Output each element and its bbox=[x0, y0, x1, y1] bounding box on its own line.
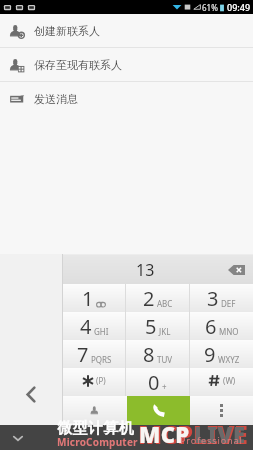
staticText: 微型计算机 bbox=[57, 419, 134, 438]
button[interactable]: More options bbox=[190, 396, 253, 425]
staticText: 发送消息 bbox=[34, 92, 78, 106]
staticText: JKL bbox=[159, 326, 171, 337]
staticText: (W) bbox=[223, 375, 236, 386]
staticText: 1 bbox=[82, 285, 94, 312]
staticText: 5 bbox=[145, 313, 157, 340]
button[interactable]: Hide keyboard bbox=[11, 431, 25, 445]
button[interactable]: 5 bbox=[126, 312, 189, 340]
button[interactable]: 2 bbox=[126, 284, 189, 312]
staticText: (P) bbox=[96, 375, 106, 386]
staticText: PQRS bbox=[91, 354, 112, 365]
button[interactable]: Back bbox=[25, 386, 37, 403]
staticText: WXYZ bbox=[218, 354, 240, 365]
button[interactable]: Call bbox=[127, 396, 190, 425]
staticText: ABC bbox=[157, 298, 173, 309]
staticText: 2 bbox=[143, 285, 155, 312]
staticText: 保存至现有联系人 bbox=[34, 58, 122, 72]
staticText: + bbox=[162, 381, 167, 392]
button[interactable]: 创建新联系人 bbox=[0, 14, 253, 47]
button[interactable]: 4 bbox=[63, 312, 125, 340]
button[interactable]: (P) bbox=[63, 368, 125, 396]
staticText: 13 bbox=[136, 259, 155, 281]
staticText: 6 bbox=[205, 313, 217, 340]
staticText: 8 bbox=[143, 341, 155, 368]
button[interactable]: 8 bbox=[126, 340, 189, 368]
staticText: TUV bbox=[157, 354, 173, 365]
staticText: MicroComputer bbox=[57, 435, 138, 449]
button[interactable]: 0 bbox=[126, 368, 189, 396]
button[interactable]: 发送消息 bbox=[0, 82, 253, 115]
button[interactable]: (W) bbox=[190, 368, 253, 396]
button[interactable]: 9 bbox=[190, 340, 253, 368]
staticText: Professional bbox=[180, 434, 243, 446]
staticText: MNO bbox=[219, 326, 239, 337]
staticText: MCP bbox=[139, 419, 190, 449]
staticText: 0 bbox=[148, 369, 160, 396]
staticText: LIVE bbox=[193, 417, 248, 450]
button[interactable]: Backspace bbox=[228, 265, 245, 275]
staticText: 9 bbox=[204, 341, 216, 368]
staticText: 3 bbox=[207, 285, 219, 312]
staticText: DEF bbox=[221, 298, 236, 309]
staticText: 7 bbox=[77, 341, 89, 368]
staticText: GHI bbox=[94, 326, 109, 337]
button[interactable]: 3 bbox=[190, 284, 253, 312]
staticText: 创建新联系人 bbox=[34, 24, 100, 38]
staticText: LIVE bbox=[194, 419, 246, 449]
button[interactable]: 1 bbox=[63, 284, 125, 312]
button[interactable]: 7 bbox=[63, 340, 125, 368]
button[interactable]: 保存至现有联系人 bbox=[0, 48, 253, 81]
button[interactable]: 6 bbox=[190, 312, 253, 340]
button[interactable]: Contacts bbox=[63, 396, 127, 425]
staticText: 4 bbox=[80, 313, 92, 340]
staticText: MCP bbox=[138, 417, 193, 450]
staticText: 09:49 bbox=[227, 1, 251, 13]
staticText: 61% bbox=[202, 2, 218, 13]
